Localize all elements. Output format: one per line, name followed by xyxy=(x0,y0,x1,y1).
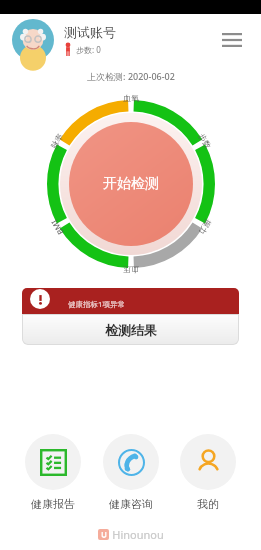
staticText: 开始检测 xyxy=(103,175,159,193)
staticText: 检测结果 xyxy=(105,322,157,338)
staticText: 上次检测: 2020-06-02 xyxy=(87,70,175,82)
staticText: BMI xyxy=(48,218,66,237)
staticText: 脉率 xyxy=(49,132,65,150)
staticText: 血氧 xyxy=(123,93,139,103)
staticText: Hinounou xyxy=(112,527,164,542)
button[interactable]: 健康咨询 xyxy=(100,431,162,514)
button[interactable]: 我的 xyxy=(177,431,239,514)
staticText: 步数: 0 xyxy=(76,44,101,55)
button[interactable]: 健康报告 xyxy=(22,431,84,514)
staticText: 健康指标1项异常 xyxy=(68,299,125,309)
staticText: 握力 xyxy=(197,218,213,236)
staticText: 步数 xyxy=(197,132,213,150)
button[interactable]: 检测结果 xyxy=(22,314,239,345)
staticText: 血压 xyxy=(123,265,139,275)
staticText: 健康咨询 xyxy=(109,497,153,511)
button[interactable]: Menu xyxy=(215,23,249,57)
button[interactable]: 开始检测 xyxy=(69,122,193,246)
staticText: 测试账号 xyxy=(64,24,116,40)
staticText: 我的 xyxy=(197,497,219,511)
staticText: 健康报告 xyxy=(31,497,75,511)
